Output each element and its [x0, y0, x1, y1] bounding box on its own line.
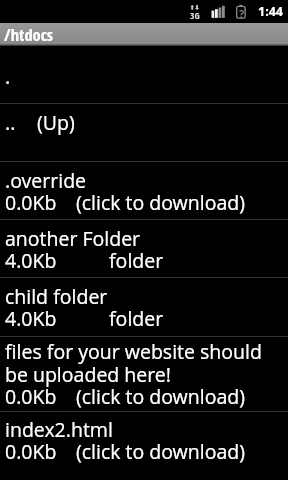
- button[interactable]: child folder: [0, 278, 288, 336]
- staticText: 4.0Kb: [5, 247, 57, 274]
- staticText: child folder: [5, 283, 108, 310]
- staticText: ?: [237, 6, 246, 21]
- staticText: be uploaded here!: [5, 361, 171, 388]
- staticText: 0.0Kb: [5, 189, 57, 216]
- other: Mobile data 3G: [190, 4, 201, 19]
- button[interactable]: .: [0, 46, 288, 103]
- button[interactable]: another Folder: [0, 220, 288, 277]
- staticText: folder: [109, 305, 164, 332]
- button[interactable]: ..: [0, 104, 288, 161]
- staticText: (click to download): [76, 189, 245, 216]
- staticText: 0.0Kb: [5, 438, 57, 465]
- staticText: (click to download): [76, 383, 245, 410]
- staticText: index2.html: [5, 416, 113, 443]
- staticText: files for your website should: [5, 338, 262, 365]
- staticText: ..: [5, 109, 16, 136]
- staticText: folder: [109, 247, 164, 274]
- staticText: 0.0Kb: [5, 383, 57, 410]
- other: Signal strength: [211, 5, 225, 19]
- staticText: .: [5, 63, 11, 90]
- button[interactable]: /htdocs: [0, 23, 288, 46]
- staticText: 1:44: [258, 3, 283, 20]
- staticText: /htdocs: [4, 23, 54, 45]
- button[interactable]: index2.html: [0, 412, 288, 469]
- other: Battery: [236, 4, 247, 20]
- staticText: another Folder: [5, 225, 141, 252]
- staticText: (Up): [37, 109, 75, 136]
- staticText: (click to download): [76, 438, 245, 465]
- staticText: .override: [5, 167, 87, 194]
- button[interactable]: files for your website should: [0, 337, 288, 411]
- staticText: 3G: [190, 9, 200, 22]
- button[interactable]: .override: [0, 162, 288, 219]
- staticText: 4.0Kb: [5, 305, 57, 332]
